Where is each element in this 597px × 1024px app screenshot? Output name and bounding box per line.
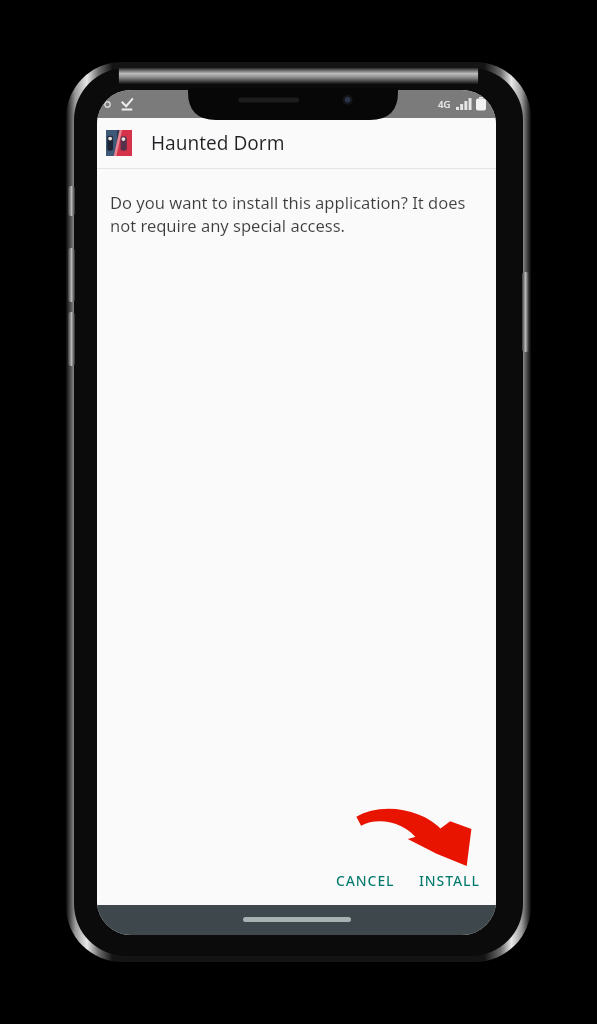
staticText: Haunted Dorm [151, 130, 285, 156]
staticText: CANCEL [336, 871, 395, 890]
staticText: 4G [438, 98, 451, 111]
staticText: INSTALL [419, 871, 480, 890]
other: Arrow pointing to Install [354, 801, 472, 867]
button[interactable]: CANCEL [324, 862, 407, 899]
button[interactable]: INSTALL [407, 862, 492, 899]
staticText: Do you want to install this application?… [110, 191, 480, 237]
